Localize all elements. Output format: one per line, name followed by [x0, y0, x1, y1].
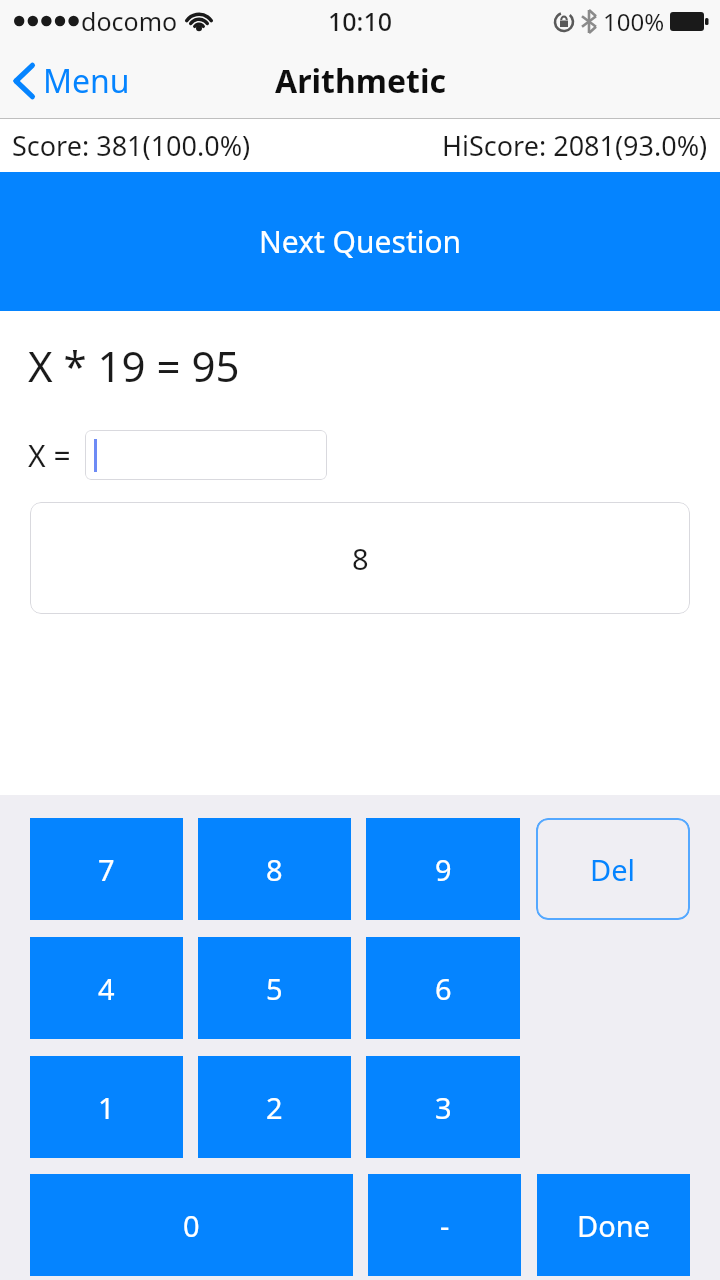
- staticText: Score: 381(100.0%): [12, 127, 251, 164]
- button[interactable]: Menu: [0, 51, 142, 111]
- button[interactable]: 9: [366, 818, 520, 920]
- button[interactable]: 6: [366, 937, 520, 1039]
- button[interactable]: 0: [30, 1174, 353, 1276]
- staticText: docomo: [81, 4, 178, 38]
- button[interactable]: [85, 430, 327, 480]
- button[interactable]: 3: [366, 1056, 520, 1158]
- staticText: X =: [28, 435, 71, 476]
- staticText: Del: [590, 850, 636, 889]
- staticText: 1: [98, 1088, 115, 1127]
- staticText: 100%: [603, 5, 665, 38]
- staticText: 2: [266, 1088, 283, 1127]
- staticText: Done: [577, 1206, 650, 1245]
- button[interactable]: 5: [198, 937, 351, 1039]
- staticText: -: [440, 1206, 450, 1245]
- staticText: 8: [352, 539, 369, 578]
- staticText: 4: [98, 969, 115, 1008]
- staticText: Next Question: [259, 221, 462, 262]
- staticText: 8: [266, 850, 283, 889]
- button[interactable]: Del: [536, 818, 690, 920]
- button[interactable]: 8: [198, 818, 351, 920]
- staticText: 9: [435, 850, 452, 889]
- button[interactable]: 1: [30, 1056, 183, 1158]
- staticText: 5: [266, 969, 283, 1008]
- staticText: 0: [183, 1206, 200, 1245]
- button[interactable]: 4: [30, 937, 183, 1039]
- button[interactable]: Next Question: [0, 172, 720, 311]
- staticText: X * 19 = 95: [28, 337, 240, 394]
- staticText: 7: [98, 850, 115, 889]
- button[interactable]: 7: [30, 818, 183, 920]
- staticText: 6: [435, 969, 452, 1008]
- button[interactable]: -: [368, 1174, 521, 1276]
- staticText: 10:10: [328, 4, 393, 38]
- button[interactable]: 8: [30, 502, 690, 614]
- button[interactable]: Done: [537, 1174, 690, 1276]
- button[interactable]: 2: [198, 1056, 351, 1158]
- staticText: HiScore: 2081(93.0%): [442, 127, 708, 164]
- staticText: Arithmetic: [275, 59, 446, 103]
- staticText: 3: [435, 1088, 452, 1127]
- staticText: Menu: [43, 59, 130, 103]
